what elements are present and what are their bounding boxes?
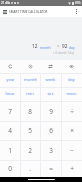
- staticText: −: [70, 146, 74, 155]
- button[interactable]: +: [61, 160, 82, 177]
- staticText: 1: [8, 146, 12, 155]
- staticText: = 3 month 1 day: [53, 51, 75, 55]
- button[interactable]: Swap units: [40, 60, 61, 73]
- staticText: day: [68, 77, 75, 83]
- button[interactable]: 9: [40, 101, 61, 121]
- button[interactable]: .: [20, 160, 40, 177]
- button[interactable]: ×: [61, 121, 82, 140]
- button[interactable]: sec: [40, 87, 61, 101]
- button[interactable]: −: [61, 140, 82, 160]
- staticText: 92: [62, 43, 68, 50]
- button[interactable]: 0: [0, 160, 20, 177]
- staticText: .: [29, 164, 31, 173]
- staticText: day: [69, 45, 75, 50]
- staticText: year: [6, 77, 15, 83]
- staticText: 2: [28, 146, 32, 155]
- staticText: month: [40, 45, 51, 50]
- staticText: 4: [8, 126, 12, 135]
- button[interactable]: =: [40, 160, 61, 177]
- staticText: 3: [49, 146, 53, 155]
- staticText: week: [45, 77, 56, 83]
- button[interactable]: 2: [20, 140, 40, 160]
- button[interactable]: 4: [0, 121, 20, 140]
- button[interactable]: month: [20, 73, 40, 87]
- button[interactable]: 8: [20, 101, 40, 121]
- button[interactable]: 5: [20, 121, 40, 140]
- staticText: hour: [5, 91, 15, 97]
- staticText: 9: [49, 107, 53, 116]
- staticText: SMART TIME CALCULATOR: [9, 10, 48, 14]
- button[interactable]: More options: [71, 6, 82, 17]
- button[interactable]: hour: [0, 87, 20, 101]
- button[interactable]: ÷: [61, 101, 82, 121]
- button[interactable]: 6: [40, 121, 61, 140]
- button[interactable]: 3: [40, 140, 61, 160]
- staticText: 0: [8, 164, 12, 173]
- button[interactable]: Clear all: [20, 60, 40, 73]
- button[interactable]: msec: [61, 87, 82, 101]
- button[interactable]: Open navigation menu: [0, 6, 9, 17]
- button[interactable]: week: [40, 73, 61, 87]
- staticText: min: [26, 91, 34, 97]
- button[interactable]: year: [0, 73, 20, 87]
- staticText: 85%: [75, 1, 81, 5]
- staticText: msec: [66, 91, 77, 97]
- staticText: =: [49, 164, 53, 173]
- staticText: =: [57, 43, 60, 49]
- button[interactable]: 7: [0, 101, 20, 121]
- button[interactable]: Toggle visibility: [61, 60, 82, 73]
- button[interactable]: 1: [0, 140, 20, 160]
- staticText: ×: [70, 126, 74, 135]
- button[interactable]: day: [61, 73, 82, 87]
- button[interactable]: Clear: [0, 60, 20, 73]
- staticText: 6: [49, 126, 53, 135]
- staticText: 21:46: [1, 1, 10, 5]
- staticText: month: [24, 77, 37, 83]
- staticText: +: [70, 164, 74, 173]
- staticText: 5: [28, 126, 32, 135]
- staticText: 8: [28, 107, 32, 116]
- staticText: 7: [8, 107, 12, 116]
- button[interactable]: min: [20, 87, 40, 101]
- staticText: ÷: [70, 107, 74, 116]
- staticText: sec: [47, 91, 54, 97]
- staticText: 12: [32, 43, 38, 50]
